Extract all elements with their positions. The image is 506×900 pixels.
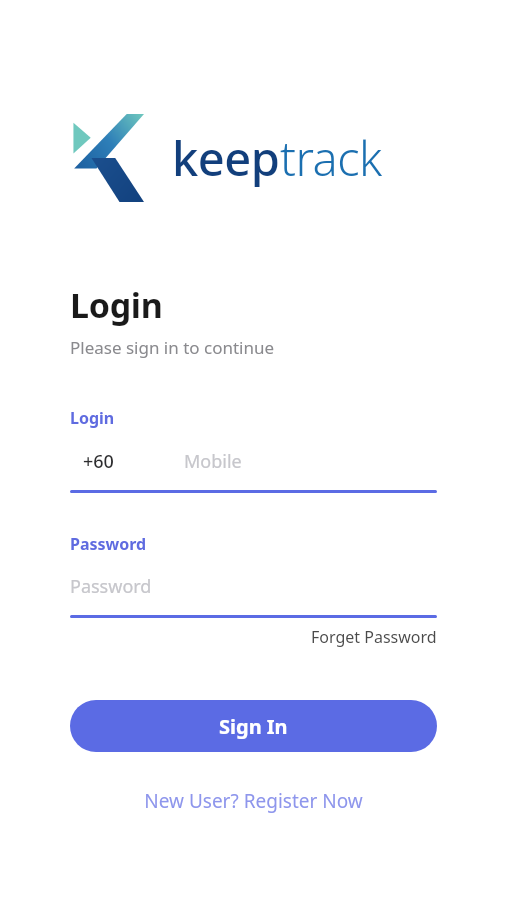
staticText: +60 bbox=[83, 449, 114, 474]
button[interactable]: New User? Register Now bbox=[136, 784, 371, 818]
staticText: New User? Register Now bbox=[144, 788, 363, 814]
button[interactable]: Forget Password bbox=[311, 624, 437, 650]
staticText: Password bbox=[70, 533, 147, 555]
staticText: Forget Password bbox=[311, 626, 437, 648]
staticText: Mobile bbox=[184, 449, 242, 474]
button[interactable]: Password bbox=[70, 574, 437, 599]
staticText: Login bbox=[70, 407, 115, 429]
staticText: Login bbox=[70, 282, 163, 328]
staticText: Password bbox=[70, 574, 152, 599]
staticText: track bbox=[280, 126, 382, 190]
staticText: keep bbox=[172, 126, 280, 190]
staticText: Please sign in to continue bbox=[70, 336, 275, 359]
staticText: Sign In bbox=[219, 713, 288, 740]
button[interactable]: Sign In bbox=[70, 700, 437, 752]
button[interactable]: +60 bbox=[70, 449, 437, 474]
other: keeptrack logo bbox=[72, 114, 144, 202]
